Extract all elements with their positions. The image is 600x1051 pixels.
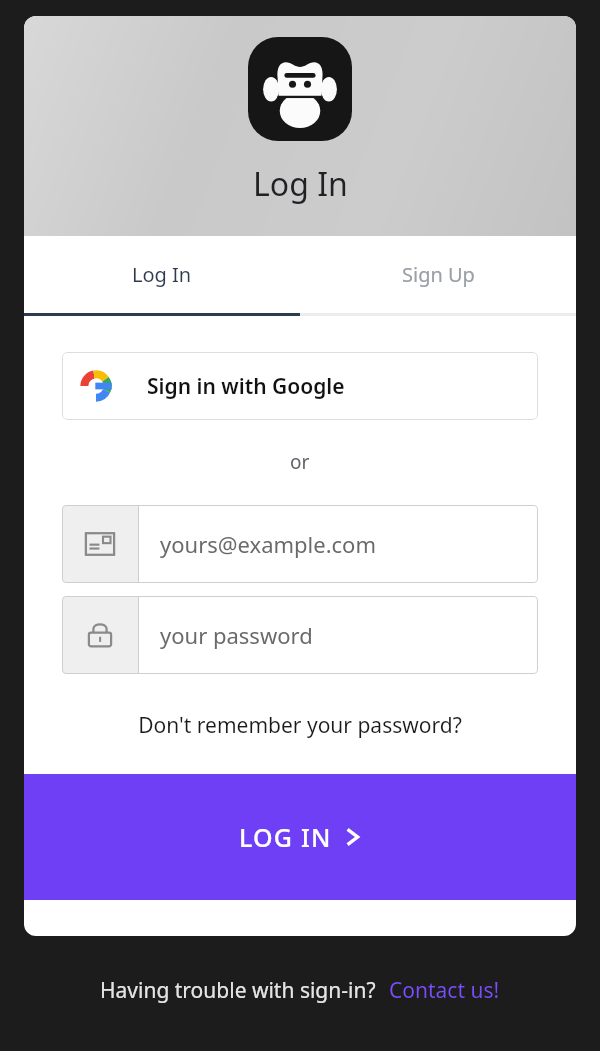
staticText: Log In: [253, 162, 348, 206]
button[interactable]: Contact us!: [389, 976, 500, 1005]
staticText: Don't remember your password?: [138, 711, 462, 740]
button[interactable]: your password: [62, 596, 538, 674]
button[interactable]: LOG IN: [24, 774, 576, 900]
button[interactable]: yours@example.com: [62, 505, 538, 583]
button[interactable]: Sign in with Google: [62, 352, 538, 420]
staticText: Having trouble with sign-in?: [100, 976, 376, 1005]
staticText: LOG IN: [239, 820, 332, 854]
button[interactable]: Don't remember your password?: [134, 707, 466, 744]
staticText: Log In: [132, 261, 192, 288]
button[interactable]: Sign Up: [300, 236, 576, 313]
staticText: yours@example.com: [160, 529, 376, 559]
staticText: or: [290, 449, 310, 475]
staticText: Sign Up: [402, 261, 475, 288]
staticText: Contact us!: [389, 976, 500, 1005]
staticText: Sign in with Google: [147, 372, 345, 401]
button[interactable]: Log In: [24, 236, 300, 313]
staticText: your password: [160, 620, 313, 650]
